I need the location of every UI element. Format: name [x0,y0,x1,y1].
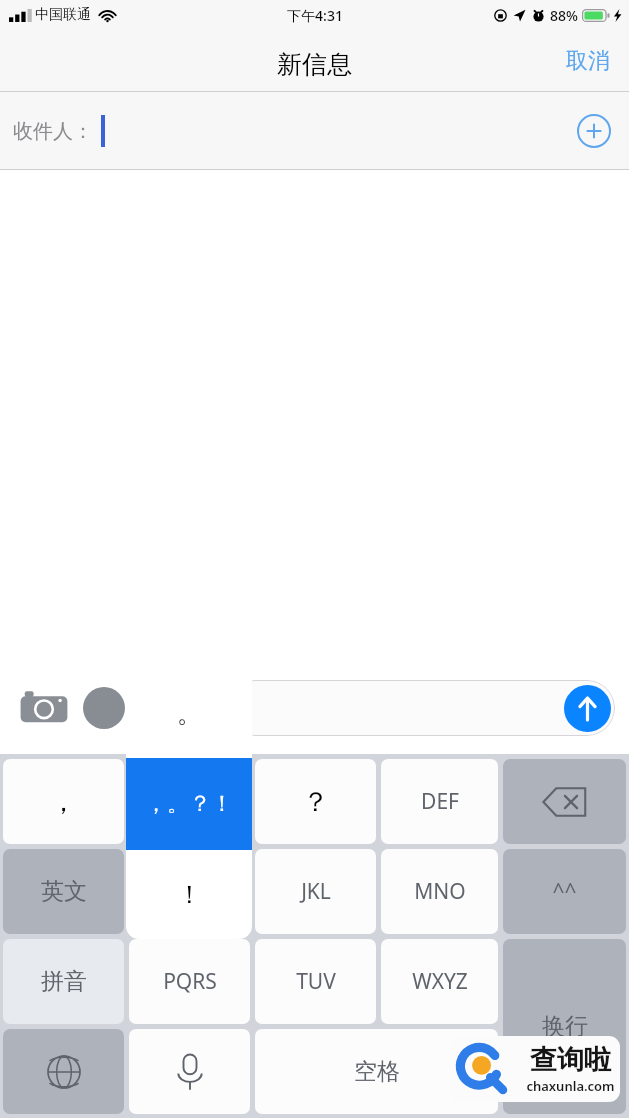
staticText: ， [50,785,77,819]
staticText: 取消 [566,47,610,75]
staticText: 。 [177,698,202,729]
button[interactable]: 换行 [503,939,626,1114]
staticText: 新信息 [277,49,352,80]
staticText: 英文 [41,877,87,906]
button[interactable]: Apps [83,687,125,729]
staticText: 查询啦 [530,1043,611,1077]
staticText: WXYZ [412,967,468,996]
staticText: MNO [414,877,466,906]
button[interactable]: ，。？！ [129,759,250,844]
staticText: 88% [550,6,578,25]
staticText: ^^ [552,877,577,906]
staticText: ！ [177,879,202,910]
staticText: JKL [301,877,331,906]
button[interactable]: JKL [255,849,376,934]
button[interactable]: 取消 [557,40,619,82]
button[interactable]: ？ [255,759,376,844]
button[interactable]: Delete [503,759,626,844]
staticText: 拼音 [41,967,87,996]
staticText: 中国联通 [35,6,91,24]
button[interactable]: Add contact [573,110,615,152]
button[interactable]: Switch keyboard [3,1029,124,1114]
button[interactable]: ， [3,759,124,844]
staticText: ，。？！ [150,789,230,814]
button[interactable]: 。 [126,668,252,939]
button[interactable]: Send [227,680,615,736]
staticText: TUV [296,967,336,996]
button[interactable]: ！ [129,849,250,934]
button[interactable]: Send [564,685,611,732]
staticText: DEF [421,787,459,816]
staticText: ！ [176,875,203,909]
staticText: 下午4:31 [287,6,343,25]
button[interactable]: 拼音 [3,939,124,1024]
button[interactable]: Voice input [129,1029,250,1114]
staticText: 收件人： [13,119,93,144]
button[interactable]: WXYZ [381,939,498,1024]
staticText: ，。？！ [145,790,233,818]
staticText: 换行 [542,1012,588,1041]
button[interactable]: DEF [381,759,498,844]
staticText: 空格 [354,1057,400,1086]
button[interactable]: Camera [16,685,72,731]
staticText: PQRS [163,967,217,996]
button[interactable]: TUV [255,939,376,1024]
button[interactable]: 空格 [255,1029,498,1114]
button[interactable]: ^^ [503,849,626,934]
staticText: ？ [302,785,329,819]
button[interactable]: 英文 [3,849,124,934]
button[interactable]: PQRS [129,939,250,1024]
button[interactable]: MNO [381,849,498,934]
staticText: chaxunla.com [526,1077,615,1095]
